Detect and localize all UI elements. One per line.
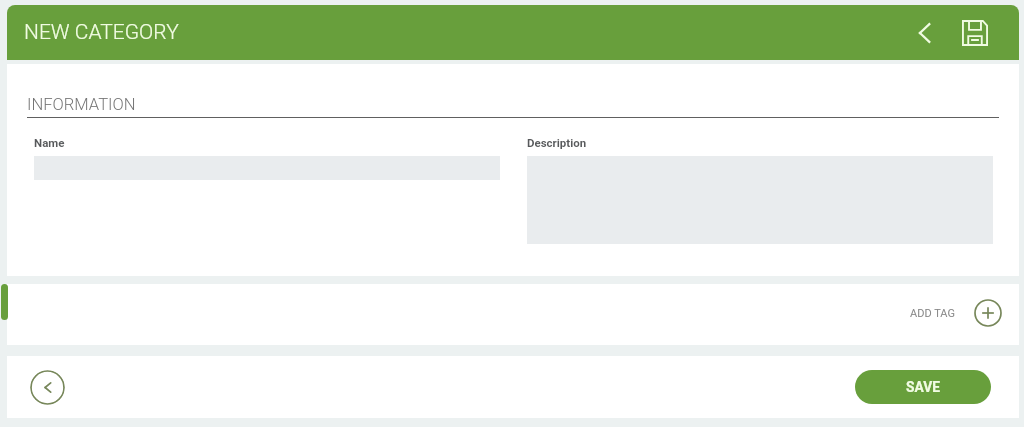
staticText: NEW CATEGORY: [24, 20, 179, 45]
staticText: INFORMATION: [27, 95, 136, 114]
staticText: ADD TAG: [910, 307, 955, 320]
button[interactable]: Back: [905, 13, 945, 53]
staticText: Description: [527, 136, 587, 149]
button[interactable]: Save: [955, 13, 995, 53]
staticText: Name: [34, 136, 65, 149]
button[interactable]: ADD TAG: [904, 299, 1002, 327]
staticText: SAVE: [906, 379, 941, 395]
button[interactable]: Back: [30, 370, 65, 405]
button[interactable]: SAVE: [855, 370, 991, 404]
